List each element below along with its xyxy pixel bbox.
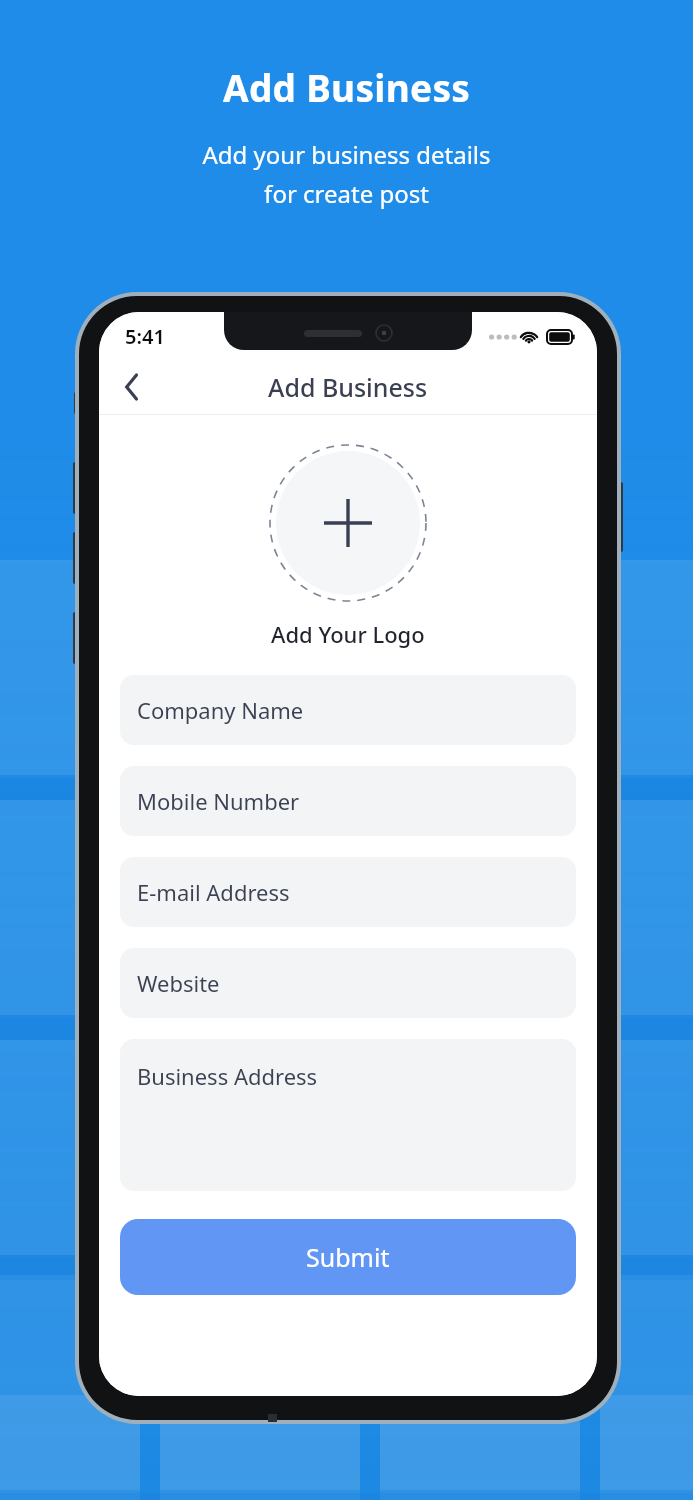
staticText: 5:41: [125, 323, 165, 350]
staticText: Website: [137, 968, 220, 998]
button[interactable]: E-mail Address: [120, 857, 576, 927]
button[interactable]: Submit: [120, 1219, 576, 1295]
button[interactable]: Company Name: [120, 675, 576, 745]
button[interactable]: Website: [120, 948, 576, 1018]
button[interactable]: Mobile Number: [120, 766, 576, 836]
button[interactable]: Business Address: [120, 1039, 576, 1191]
staticText: E-mail Address: [137, 877, 290, 907]
staticText: Submit: [306, 1240, 390, 1274]
button[interactable]: Back: [109, 364, 155, 410]
staticText: Add Business: [268, 370, 428, 404]
button[interactable]: Add Your Logo: [268, 443, 428, 603]
staticText: Add Business: [223, 62, 471, 112]
staticText: Mobile Number: [137, 786, 300, 816]
staticText: Business Address: [137, 1061, 318, 1091]
staticText: Company Name: [137, 695, 304, 725]
staticText: Add Your Logo: [271, 619, 425, 649]
staticText: Add your business details for create pos…: [202, 138, 491, 210]
